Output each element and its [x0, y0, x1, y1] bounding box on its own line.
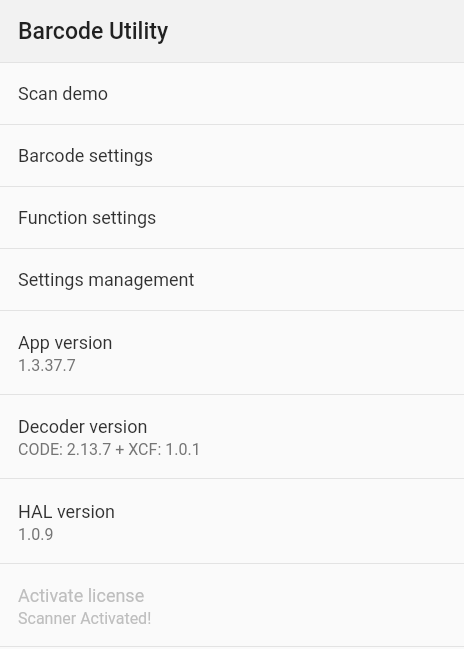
staticText: Function settings	[18, 207, 157, 228]
staticText: CODE: 2.13.7 + XCF: 1.0.1	[18, 440, 201, 459]
staticText: Scanner Activated!	[18, 609, 152, 628]
button[interactable]: App version	[0, 311, 464, 394]
staticText: Activate license	[18, 585, 145, 606]
staticText: Barcode settings	[18, 145, 154, 166]
staticText: Scan demo	[18, 83, 109, 104]
button[interactable]: Activate license	[0, 564, 464, 646]
staticText: Barcode Utility	[18, 18, 169, 45]
staticText: App version	[18, 332, 113, 353]
staticText: HAL version	[18, 501, 116, 522]
button[interactable]: Barcode settings	[0, 125, 464, 186]
button[interactable]: Decoder version	[0, 395, 464, 478]
button[interactable]: Settings management	[0, 249, 464, 310]
staticText: Settings management	[18, 269, 195, 290]
button[interactable]: HAL version	[0, 479, 464, 563]
staticText: Decoder version	[18, 416, 148, 437]
staticText: 1.0.9	[18, 525, 54, 544]
button[interactable]: Function settings	[0, 187, 464, 248]
button[interactable]: Scan demo	[0, 63, 464, 124]
staticText: 1.3.37.7	[18, 356, 76, 375]
